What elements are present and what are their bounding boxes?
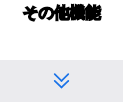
staticText: その他機能 — [0, 3, 123, 23]
staticText: その他機能 — [0, 3, 123, 23]
button[interactable]: Expand more — [49, 68, 74, 93]
